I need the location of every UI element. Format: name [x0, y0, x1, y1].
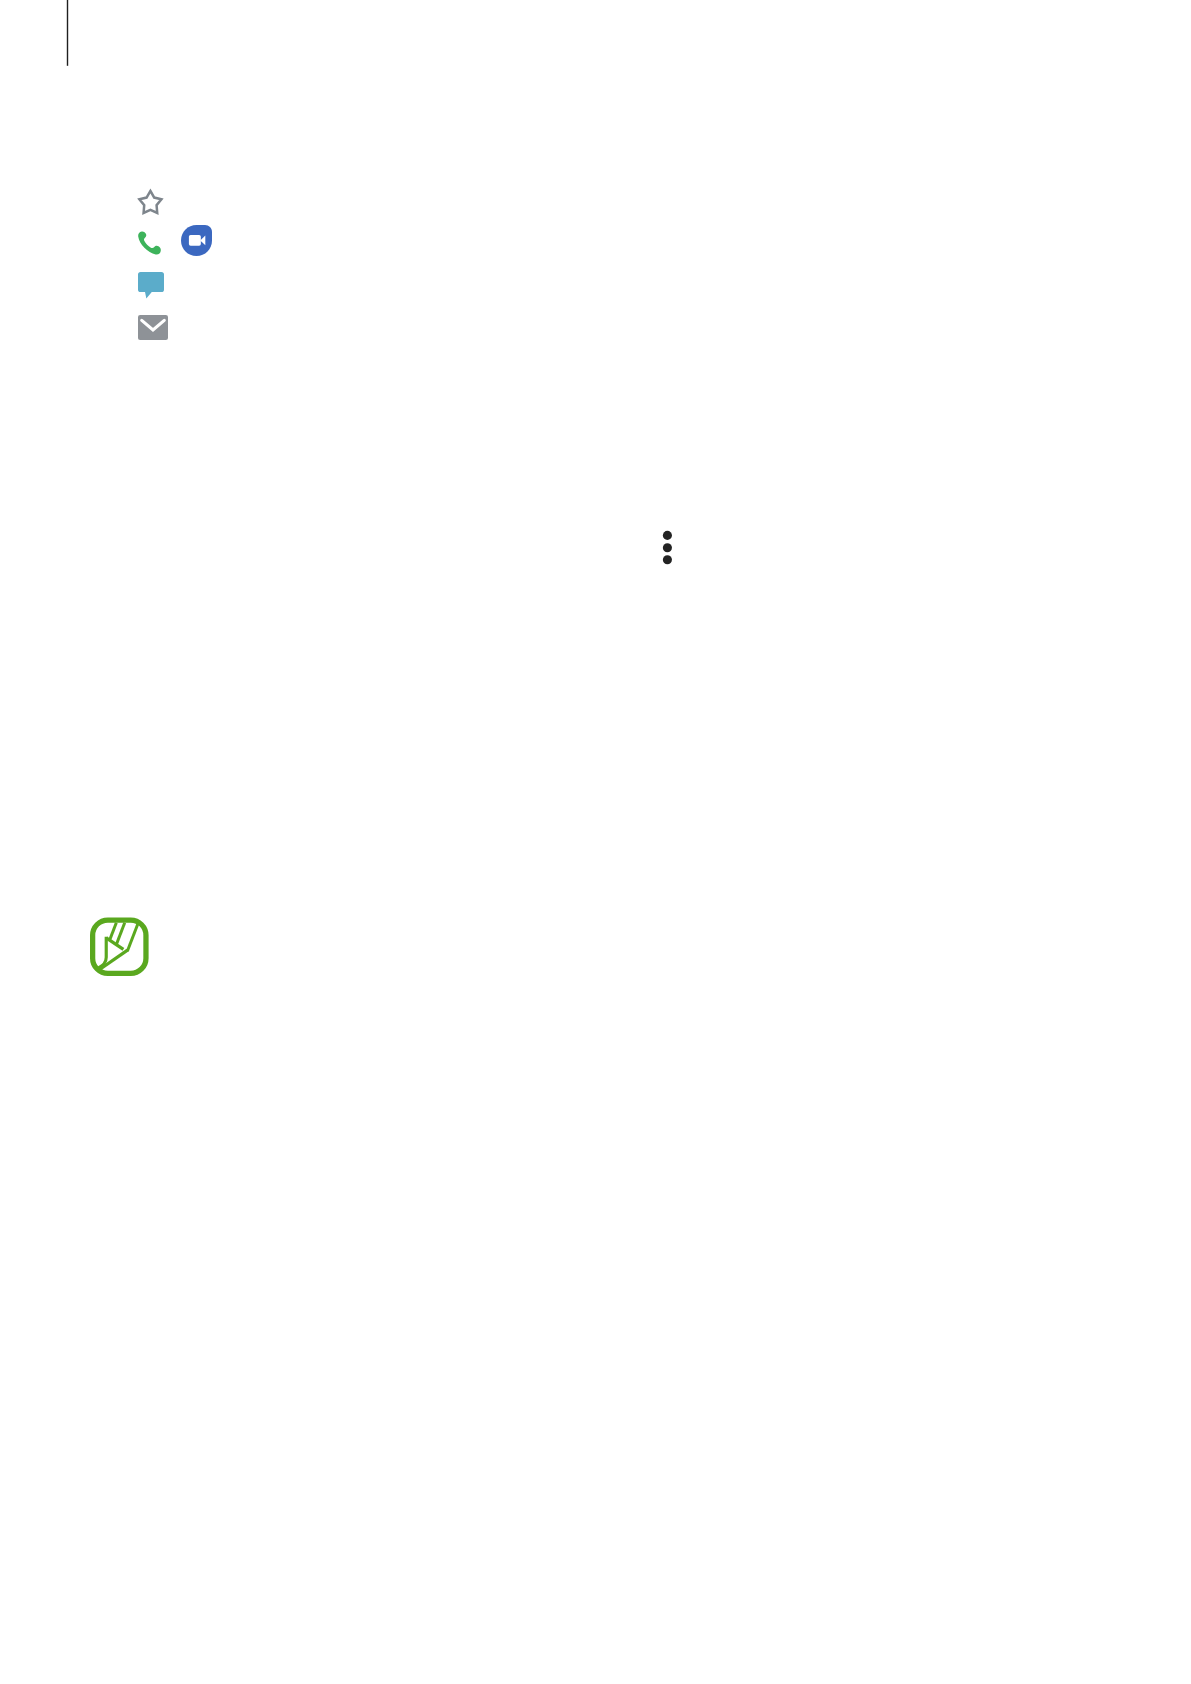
button[interactable]: Email: [133, 310, 173, 345]
button[interactable]: Notes: [84, 911, 155, 982]
button[interactable]: Favourite: [133, 185, 167, 219]
button[interactable]: More options: [651, 519, 684, 568]
button[interactable]: Video call: [177, 221, 216, 260]
button[interactable]: Call: [133, 227, 165, 259]
button[interactable]: Message: [133, 267, 169, 304]
